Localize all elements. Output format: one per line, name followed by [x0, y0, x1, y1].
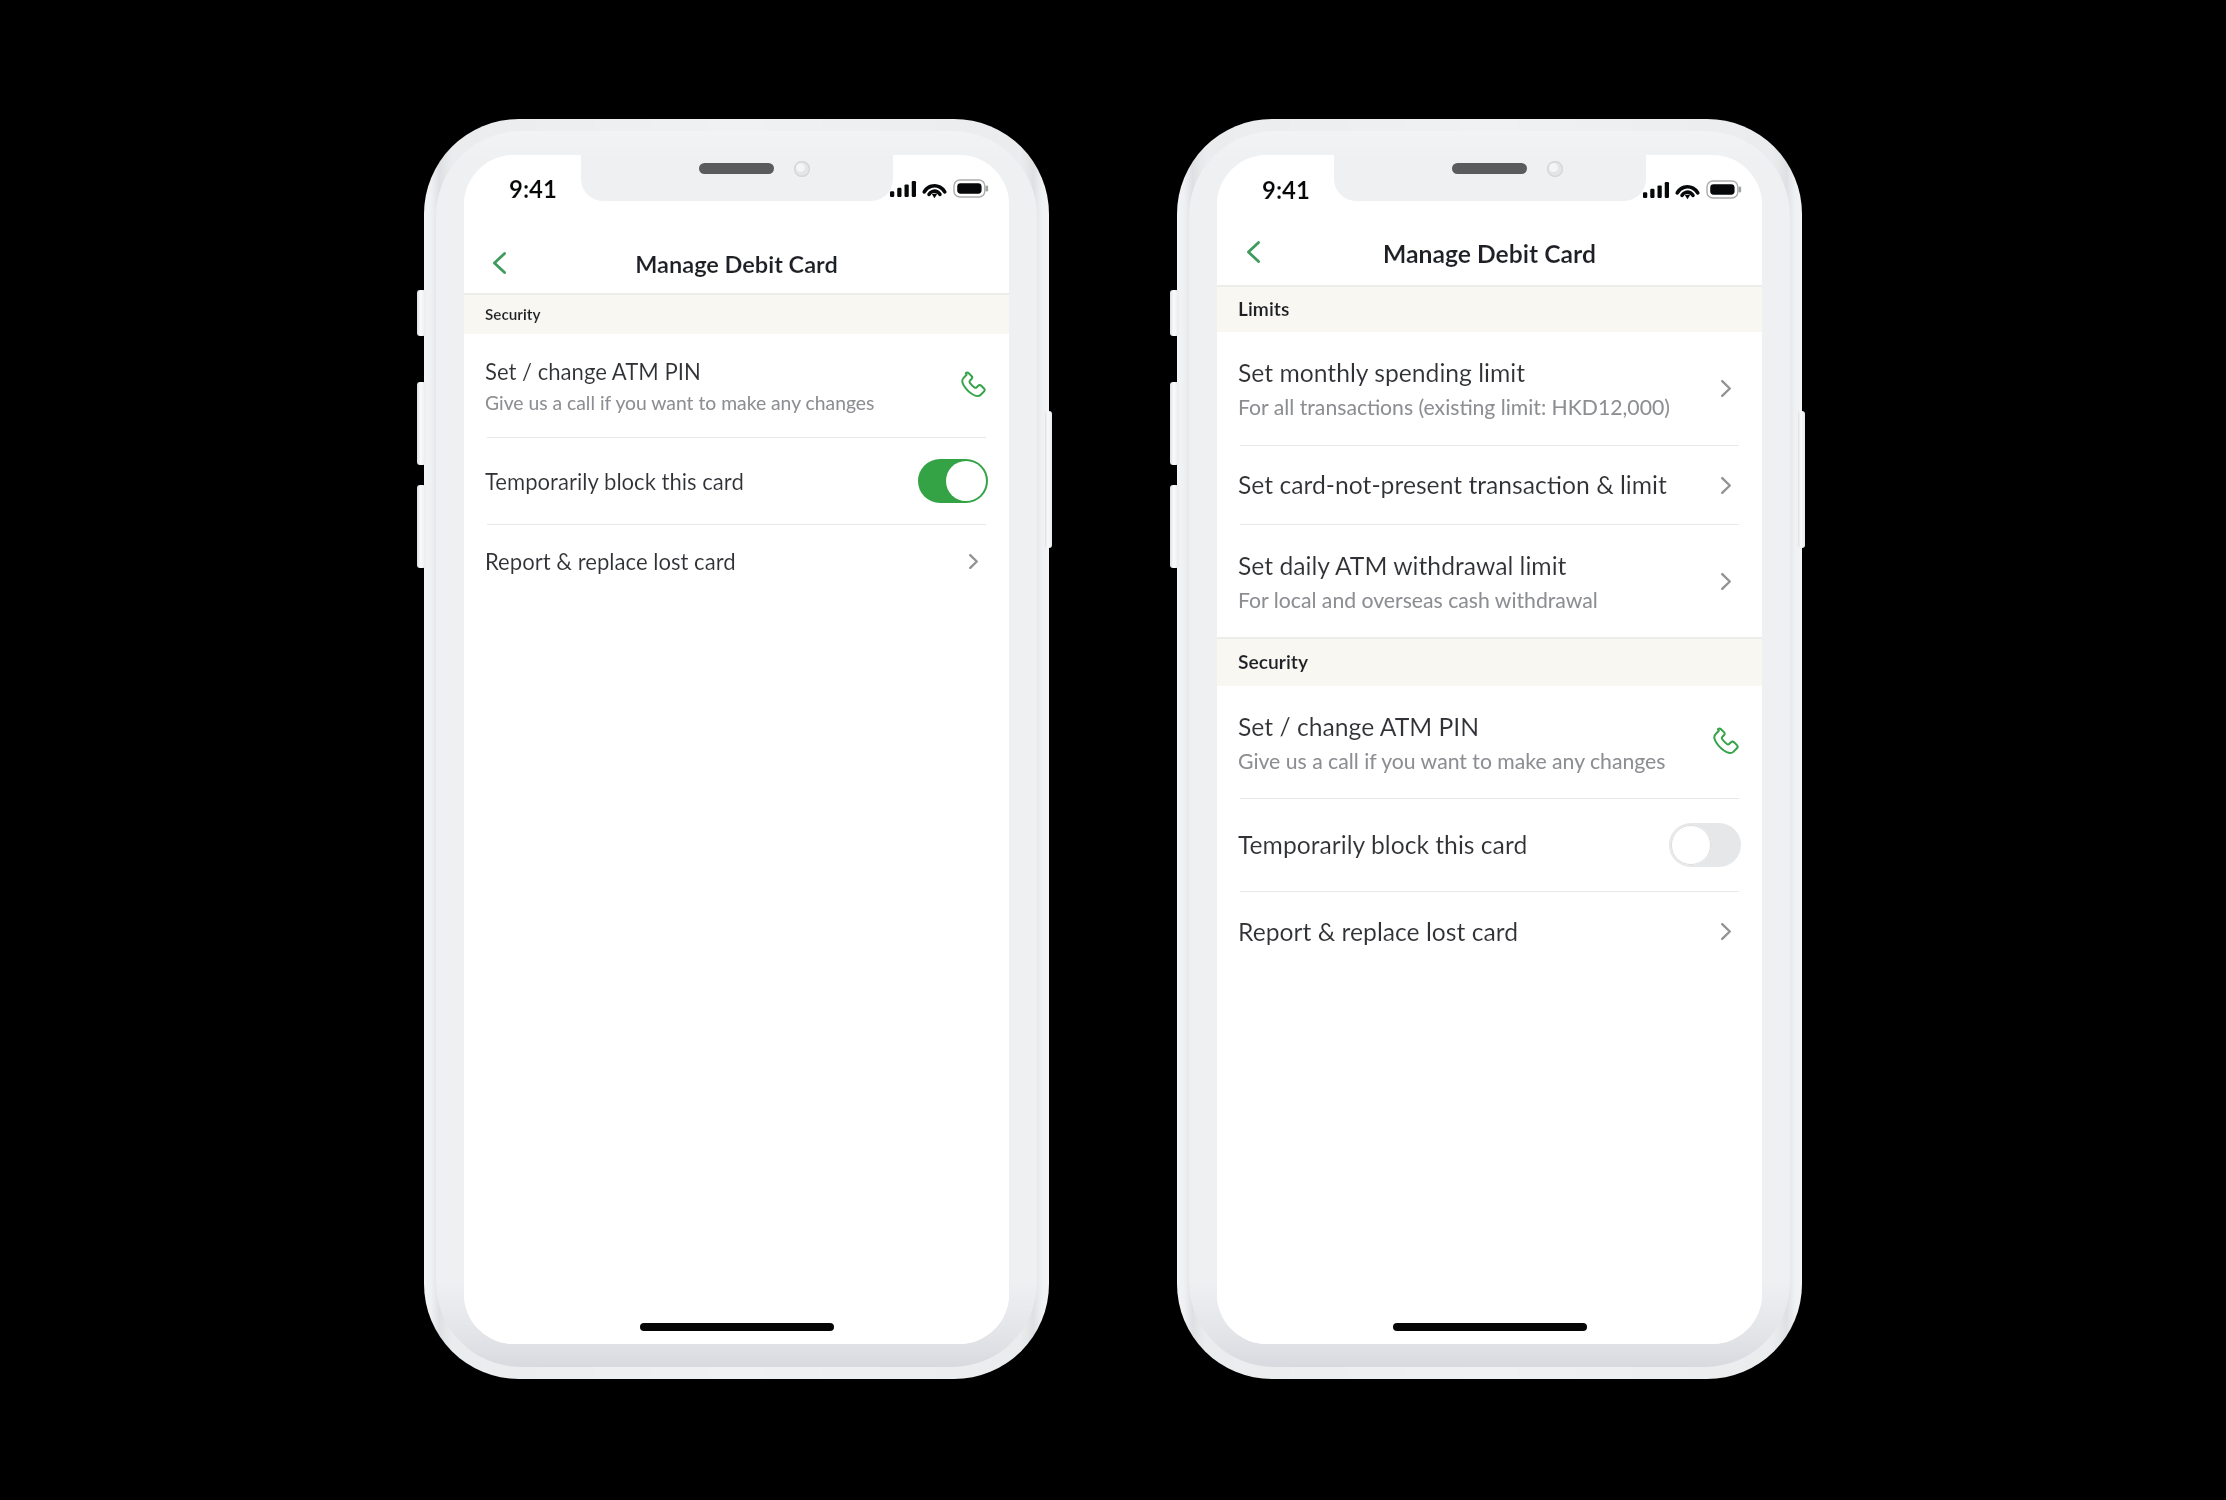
button[interactable]: Set daily ATM withdrawal limit [1217, 525, 1762, 637]
button[interactable]: Set / change ATM PIN [464, 334, 1009, 437]
staticText: Set card-not-present transaction & limit [1238, 470, 1667, 500]
staticText: For local and overseas cash withdrawal [1238, 587, 1598, 612]
button[interactable]: Call us [958, 369, 988, 402]
staticText: 9:41 [509, 174, 557, 203]
button[interactable]: Back [472, 236, 526, 290]
staticText: Manage Debit Card [635, 250, 838, 278]
staticText: Set daily ATM withdrawal limit [1238, 551, 1567, 581]
other: Open [1711, 473, 1741, 498]
staticText: For all transactions (existing limit: HK… [1238, 394, 1670, 419]
staticText: 9:41 [1262, 175, 1310, 204]
staticText: Report & replace lost card [1238, 917, 1519, 947]
staticText: Set / change ATM PIN [1238, 712, 1480, 742]
button[interactable]: Set / change ATM PIN [1217, 686, 1762, 798]
staticText: Give us a call if you want to make any c… [1238, 748, 1666, 773]
button[interactable]: Temporarily block this card [918, 459, 988, 503]
staticText: Security [1238, 650, 1309, 673]
staticText: Temporarily block this card [1238, 830, 1528, 860]
staticText: Set monthly spending limit [1238, 358, 1526, 388]
button[interactable]: Set card-not-present transaction & limit [1217, 446, 1762, 524]
button[interactable]: Temporarily block this card [1217, 799, 1762, 891]
staticText: Temporarily block this card [485, 468, 744, 495]
other: Open [1711, 569, 1741, 594]
button[interactable]: Temporarily block this card [464, 438, 1009, 524]
other: Open [959, 550, 988, 573]
staticText: Manage Debit Card [1383, 239, 1596, 269]
staticText: Limits [1238, 297, 1290, 320]
button[interactable]: Call us [1710, 725, 1741, 759]
button[interactable]: Back [1225, 225, 1279, 279]
button[interactable]: Set monthly spending limit [1217, 332, 1762, 445]
staticText: Report & replace lost card [485, 548, 736, 575]
button[interactable]: Temporarily block this card [1669, 823, 1741, 867]
button[interactable]: Report & replace lost card [1217, 892, 1762, 971]
staticText: Security [485, 305, 541, 323]
staticText: Set / change ATM PIN [485, 358, 701, 385]
other: Open [1711, 376, 1741, 401]
other: Open [1711, 919, 1741, 944]
staticText: Give us a call if you want to make any c… [485, 391, 875, 414]
button[interactable]: Report & replace lost card [464, 525, 1009, 598]
